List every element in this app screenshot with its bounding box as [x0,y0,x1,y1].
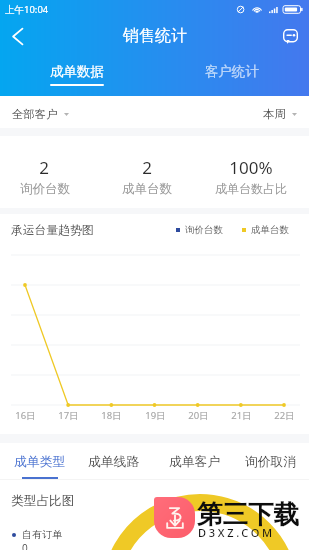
button[interactable]: 询价取消 [237,448,305,480]
staticText: 询价取消 [245,454,297,470]
staticText: 2 [39,156,49,179]
staticText: 17日 [58,409,79,422]
staticText: 18日 [101,409,122,422]
button[interactable]: 客户统计 [154,58,309,96]
staticText: 上午10:04 [5,3,49,16]
staticText: 询价台数 [20,181,70,197]
staticText: 类型占比图 [11,493,75,509]
staticText: 成单客户 [169,454,221,470]
button[interactable]: 成单客户 [161,448,229,480]
staticText: 承运台量趋势图 [11,223,94,238]
button[interactable]: Back [0,19,35,54]
staticText: 询价台数 [185,224,223,236]
staticText: 全部客户 [12,107,58,121]
staticText: 成单类型 [14,454,66,470]
staticText: 100% [229,156,273,179]
staticText: 22日 [274,409,295,422]
button[interactable]: 成单线路 [80,448,148,480]
staticText: 第三下载 [197,498,299,530]
staticText: 成单数据 [50,63,104,80]
staticText: 20日 [188,409,209,422]
staticText: 成单台数 [122,181,172,197]
staticText: 16日 [15,409,36,422]
staticText: 成单台数占比 [215,181,287,196]
staticText: 本周 [263,107,286,121]
button[interactable]: Messages [273,19,307,53]
staticText: 19日 [145,409,166,422]
staticText: 2 [142,156,152,179]
staticText: 销售统计 [123,26,187,46]
staticText: 自有订单 [22,528,62,541]
button[interactable]: 本周 [262,103,298,125]
button[interactable]: 成单类型 [6,448,74,480]
staticText: 客户统计 [205,63,259,80]
staticText: 21日 [231,409,252,422]
staticText: D3XZ.COM [198,525,275,540]
staticText: 成单台数 [251,224,289,236]
button[interactable]: 成单数据 [0,58,154,96]
staticText: 0 [22,541,28,550]
staticText: 成单线路 [88,454,140,470]
button[interactable]: 全部客户 [11,103,70,125]
